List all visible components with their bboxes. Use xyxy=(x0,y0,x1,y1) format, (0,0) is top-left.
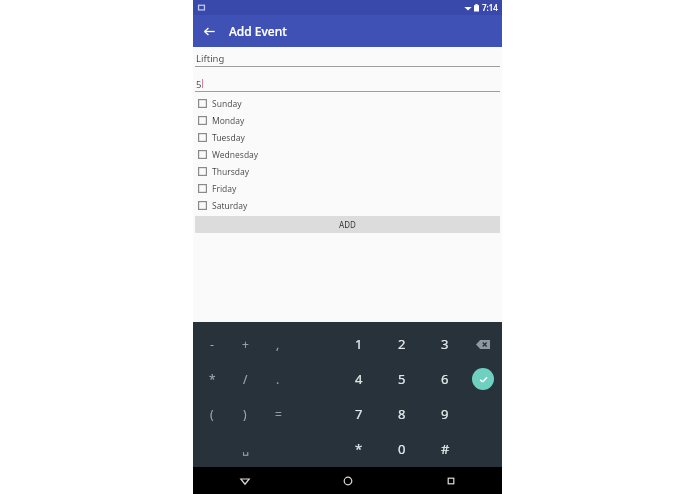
button[interactable]: 3 xyxy=(430,333,460,355)
staticText: Add Event xyxy=(229,23,287,39)
button[interactable]: . xyxy=(263,368,293,390)
button[interactable]: Tuesday xyxy=(193,129,502,146)
staticText: Tuesday xyxy=(212,132,245,144)
button[interactable]: * xyxy=(197,368,227,390)
button[interactable]: 5 xyxy=(387,368,417,390)
button[interactable]: 1 xyxy=(344,333,374,355)
button[interactable]: 8 xyxy=(387,403,417,425)
button[interactable]: 4 xyxy=(344,368,374,390)
button[interactable]: 5 xyxy=(193,78,502,92)
button[interactable]: Sunday xyxy=(193,95,502,112)
button[interactable]: / xyxy=(230,368,260,390)
staticText: 1 xyxy=(355,335,363,353)
staticText: 7:14 xyxy=(482,2,498,13)
staticText: Lifting xyxy=(196,52,225,64)
staticText: # xyxy=(441,440,450,458)
button[interactable]: Monday xyxy=(193,112,502,129)
button[interactable]: Saturday xyxy=(193,197,502,214)
staticText: 8 xyxy=(398,405,406,423)
staticText: / xyxy=(243,371,248,387)
button[interactable]: # xyxy=(430,438,460,460)
button[interactable]: Enter xyxy=(472,368,494,390)
button[interactable]: Friday xyxy=(193,180,502,197)
button[interactable]: Wednesday xyxy=(193,146,502,163)
staticText: Monday xyxy=(212,115,245,127)
staticText: + xyxy=(242,336,249,352)
button[interactable]: - xyxy=(197,333,227,355)
button[interactable]: , xyxy=(263,333,293,355)
staticText: 5 xyxy=(196,78,202,89)
staticText: 3 xyxy=(441,335,449,353)
staticText: Wednesday xyxy=(212,149,259,161)
button[interactable]: 6 xyxy=(430,368,460,390)
staticText: * xyxy=(209,371,216,387)
staticText: ADD xyxy=(339,219,356,230)
button[interactable]: + xyxy=(230,333,260,355)
button[interactable]: Lifting xyxy=(193,52,502,67)
button[interactable]: ) xyxy=(230,403,260,425)
button[interactable]: Back xyxy=(193,15,225,47)
button[interactable]: ␣ xyxy=(230,438,260,460)
button[interactable]: Recents xyxy=(399,467,502,494)
button[interactable]: 7 xyxy=(344,403,374,425)
staticText: 4 xyxy=(355,370,363,388)
staticText: 0 xyxy=(398,440,406,458)
staticText: * xyxy=(355,440,363,458)
staticText: Thursday xyxy=(212,166,250,178)
staticText: . xyxy=(276,371,280,387)
button[interactable]: 9 xyxy=(430,403,460,425)
button[interactable]: Thursday xyxy=(193,163,502,180)
staticText: Saturday xyxy=(212,200,248,212)
staticText: Sunday xyxy=(212,98,242,110)
staticText: 7 xyxy=(355,405,363,423)
staticText: 6 xyxy=(441,370,449,388)
button[interactable]: ADD xyxy=(195,216,500,233)
staticText: ) xyxy=(243,406,247,422)
button[interactable]: Back xyxy=(193,467,296,494)
button[interactable]: 0 xyxy=(387,438,417,460)
button[interactable]: = xyxy=(263,403,293,425)
staticText: ␣ xyxy=(242,443,249,456)
staticText: , xyxy=(276,336,280,352)
button[interactable]: Backspace xyxy=(471,335,495,353)
staticText: 9 xyxy=(441,405,449,423)
staticText: = xyxy=(275,406,282,422)
button[interactable]: Home xyxy=(296,467,399,494)
staticText: 5 xyxy=(398,370,406,388)
staticText: - xyxy=(210,336,214,352)
button[interactable]: 2 xyxy=(387,333,417,355)
staticText: 2 xyxy=(398,335,406,353)
button[interactable]: ( xyxy=(197,403,227,425)
button[interactable]: * xyxy=(344,438,374,460)
staticText: Friday xyxy=(212,183,237,195)
staticText: ( xyxy=(210,406,214,422)
